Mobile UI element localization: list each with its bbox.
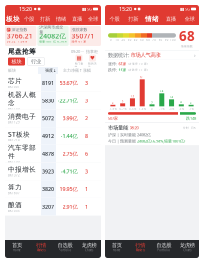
button[interactable]: 情绪 <box>53 13 69 25</box>
button[interactable]: 沪 <box>5 26 36 46</box>
staticText: 涨跌家数 <box>71 27 87 32</box>
button[interactable]: 首页 <box>105 240 128 254</box>
button[interactable]: 全球 <box>85 13 101 25</box>
staticText: 6 <box>85 150 88 157</box>
button[interactable]: 打新 <box>37 13 53 25</box>
button[interactable]: 涨跌家数 <box>70 26 101 46</box>
staticText: -7% <box>189 107 194 111</box>
staticText: 酿酒 <box>8 201 22 209</box>
button[interactable]: 芯片 <box>5 74 101 92</box>
staticText: 个股 <box>109 16 119 22</box>
staticText: 2 <box>112 101 114 104</box>
staticText: 3820 <box>42 185 54 193</box>
staticText: 板块 <box>6 15 20 23</box>
staticText: 龙虎榜 <box>81 242 96 249</box>
button[interactable]: 消费电子 <box>5 109 101 127</box>
button[interactable]: 机器人概念 <box>5 92 101 109</box>
button[interactable]: 个股 <box>21 13 37 25</box>
staticText: 61 <box>140 75 144 79</box>
staticText: 24082亿 <box>39 31 66 40</box>
staticText: 20 <box>121 38 125 42</box>
button[interactable]: ST板块 <box>5 127 101 145</box>
staticText: 5G <box>87 6 92 12</box>
staticText: Charts <box>183 248 191 252</box>
button[interactable]: 数据统计: <box>105 51 199 60</box>
button[interactable]: 酿酒 <box>5 198 101 216</box>
staticText: 缩量1801亿 6.94% <box>39 40 66 43</box>
staticText: 首页 <box>12 242 22 249</box>
button[interactable]: 板块 <box>5 13 21 25</box>
button[interactable]: 首页 <box>5 240 29 254</box>
staticText: › <box>194 51 196 59</box>
staticText: 1-3% <box>139 107 146 111</box>
staticText: Home <box>13 248 21 252</box>
button[interactable]: 全球 <box>180 13 199 25</box>
button[interactable]: 个股 <box>105 13 124 25</box>
button[interactable]: 行业 <box>27 57 44 65</box>
staticText: 8191 <box>42 79 54 86</box>
button[interactable]: 我的关注 <box>87 54 98 68</box>
staticText: 19.95亿 <box>59 185 77 193</box>
staticText: BK1214 <box>8 139 20 142</box>
button[interactable]: 打新 <box>124 13 143 25</box>
staticText: 机器人概念 <box>8 91 36 107</box>
button[interactable]: 情绪 <box>143 13 161 25</box>
staticText: 15:20 <box>119 5 132 13</box>
staticText: 今日 | 预测量能 <box>108 138 136 144</box>
staticText: Portfolio <box>157 248 170 252</box>
staticText: BK1807 <box>8 191 20 195</box>
staticText: 行业 <box>31 58 41 65</box>
staticText: Markets <box>136 248 145 252</box>
staticText: 8 <box>85 132 88 139</box>
staticText: 情绪指数 <box>181 45 193 48</box>
button[interactable]: 沪深两市成交量 <box>37 26 69 46</box>
button[interactable]: 龙虎榜 <box>175 240 199 254</box>
button[interactable]: 板块 <box>8 57 25 65</box>
staticText: 0 <box>151 107 153 111</box>
staticText: 算力 <box>8 183 22 191</box>
staticText: 板块 <box>11 58 21 65</box>
button[interactable]: 自选股 <box>152 240 175 254</box>
button[interactable]: 热门板块 <box>73 54 84 68</box>
staticText: 40 <box>134 38 138 42</box>
staticText: 汽车零部件 <box>8 144 36 160</box>
staticText: 08:20 <box>129 125 138 130</box>
staticText: 3207 <box>42 203 54 210</box>
staticText: 5072 <box>42 115 54 122</box>
staticText: 5G <box>185 6 190 12</box>
staticText: 24082亿(-6.94%,缩量1801亿) <box>137 138 185 144</box>
staticText: 2.91亿 <box>62 203 77 210</box>
staticText: 30 <box>128 38 132 42</box>
staticText: 芯片 <box>8 77 22 85</box>
staticText: -3% <box>169 107 174 111</box>
staticText: 3507/1 <box>71 31 94 40</box>
staticText: 涨停: <box>108 61 117 66</box>
staticText: 涨停 61 家 <box>71 40 86 43</box>
staticText: 自选股 <box>156 242 171 249</box>
staticText: 90 <box>165 38 169 42</box>
staticText: 市场人气高涨 <box>130 52 160 58</box>
staticText: 跌停: <box>108 67 117 72</box>
staticText: 53.67亿 <box>59 79 77 86</box>
staticText: 4912 <box>42 132 54 139</box>
staticText: 首页 <box>112 242 122 249</box>
button[interactable]: 行情 <box>29 240 53 254</box>
staticText: -4.71亿 <box>60 168 77 175</box>
button[interactable]: 自选股 <box>53 240 77 254</box>
staticText: 强度↓ <box>45 68 56 73</box>
button[interactable]: 龙虎榜 <box>77 240 101 254</box>
button[interactable]: 汽车零部件 <box>5 145 101 162</box>
staticText: 2.75亿 <box>62 150 77 157</box>
staticText: 3.99亿 <box>62 115 77 122</box>
staticText: 中报增长 <box>8 165 36 174</box>
staticText: 3-5% <box>129 107 136 111</box>
button[interactable]: 行情 <box>128 240 152 254</box>
staticText: 涨幅 <box>83 68 91 73</box>
staticText: BK1199 <box>8 160 20 164</box>
button[interactable]: 直播 <box>161 13 180 25</box>
button[interactable]: 中报增长 <box>5 162 101 180</box>
button[interactable]: 算力 <box>5 180 101 198</box>
staticText: ST板块 <box>8 130 30 139</box>
staticText: BK1159 <box>8 107 20 110</box>
button[interactable]: 直播 <box>69 13 85 25</box>
